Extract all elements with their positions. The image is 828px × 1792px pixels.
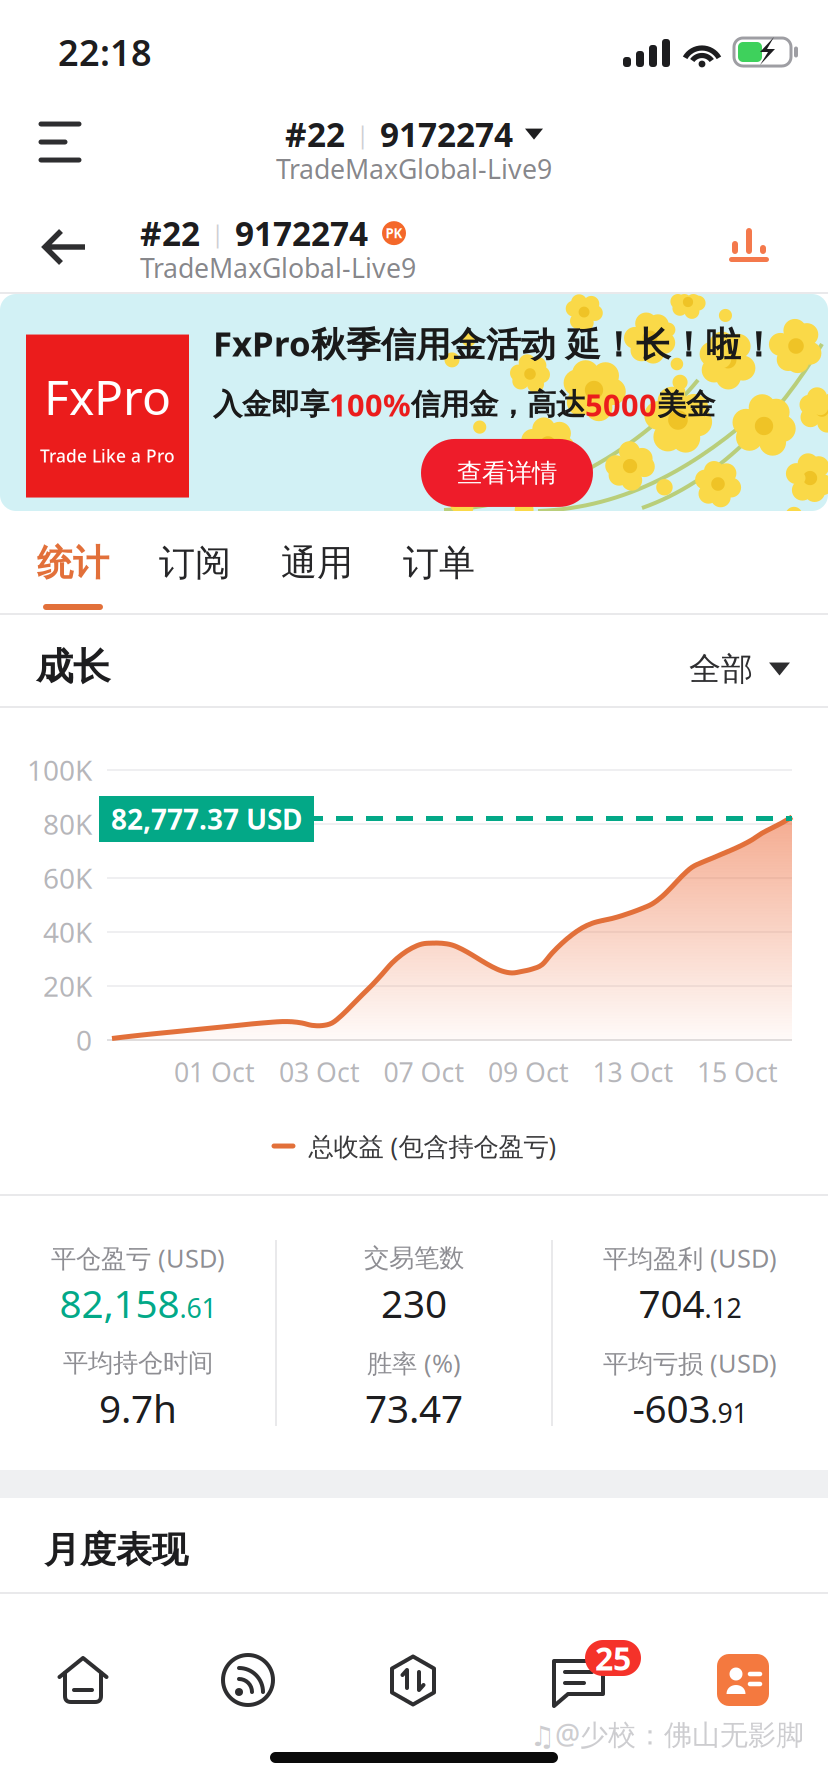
button[interactable]: Messages bbox=[551, 1652, 639, 1710]
staticText: 100K bbox=[27, 751, 92, 789]
staticText: FxPro bbox=[44, 365, 171, 428]
button[interactable]: 订阅 bbox=[134, 511, 256, 615]
button[interactable]: Home bbox=[57, 1655, 109, 1705]
staticText: 80K bbox=[43, 805, 92, 843]
button[interactable]: 全部 bbox=[596, 646, 790, 692]
staticText: 13 Oct bbox=[592, 1054, 673, 1090]
staticText: TradeMaxGlobal-Live9 bbox=[276, 151, 552, 186]
staticText: 平均亏损 (USD) bbox=[603, 1346, 777, 1380]
staticText: 25 bbox=[595, 1637, 631, 1679]
staticText: 0 bbox=[76, 1021, 92, 1059]
staticText: 信用金，高达 bbox=[411, 387, 585, 423]
staticText: 入金即享 bbox=[213, 387, 329, 423]
staticText: FxPro秋季信用金活动 延！长！啦！ bbox=[213, 320, 776, 366]
staticText: -603 bbox=[632, 1382, 710, 1434]
staticText: 胜率 (%) bbox=[367, 1346, 461, 1380]
staticText: | bbox=[211, 217, 224, 249]
staticText: 230 bbox=[381, 1277, 447, 1329]
staticText: .61 bbox=[179, 1290, 216, 1325]
staticText: .91 bbox=[710, 1395, 747, 1430]
staticText: ♫@少校：佛山无影脚 bbox=[530, 1715, 804, 1753]
staticText: 9.7h bbox=[99, 1382, 177, 1434]
staticText: 9172274 bbox=[235, 211, 368, 255]
staticText: 平仓盈亏 (USD) bbox=[51, 1241, 225, 1275]
staticText: 平均盈利 (USD) bbox=[603, 1241, 777, 1275]
staticText: 9172274 bbox=[380, 112, 513, 156]
staticText: 40K bbox=[43, 913, 92, 951]
staticText: 60K bbox=[43, 859, 92, 897]
staticText: 82,158 bbox=[59, 1277, 179, 1329]
staticText: 平均持仓时间 bbox=[63, 1347, 213, 1378]
staticText: #22 bbox=[140, 211, 200, 255]
staticText: 20K bbox=[43, 967, 92, 1005]
staticText: 09 Oct bbox=[488, 1054, 569, 1090]
staticText: 订单 bbox=[403, 541, 475, 585]
staticText: PK bbox=[385, 224, 402, 242]
staticText: TradeMaxGlobal-Live9 bbox=[140, 250, 416, 285]
staticText: 73.47 bbox=[365, 1382, 463, 1434]
button[interactable]: 订单 bbox=[378, 511, 500, 615]
staticText: 订阅 bbox=[159, 541, 231, 585]
button[interactable]: Trade bbox=[388, 1654, 438, 1707]
staticText: 22:18 bbox=[58, 28, 152, 76]
staticText: 82,777.37 USD bbox=[111, 800, 302, 838]
button[interactable]: Menu bbox=[20, 112, 100, 172]
staticText: 07 Oct bbox=[383, 1054, 464, 1090]
staticText: 704 bbox=[638, 1277, 704, 1329]
button[interactable]: FxPro bbox=[0, 294, 828, 511]
staticText: 01 Oct bbox=[174, 1054, 255, 1090]
button[interactable]: Back bbox=[30, 222, 100, 272]
staticText: #22 bbox=[285, 112, 345, 156]
staticText: 交易笔数 bbox=[364, 1242, 464, 1273]
button[interactable]: 通用 bbox=[256, 511, 378, 615]
staticText: 成长 bbox=[36, 644, 110, 690]
staticText: Trade Like a Pro bbox=[40, 444, 175, 467]
staticText: 全部 bbox=[689, 649, 753, 689]
staticText: 统计 bbox=[37, 541, 109, 585]
staticText: 通用 bbox=[281, 541, 353, 585]
staticText: .12 bbox=[704, 1290, 741, 1325]
button[interactable]: Profile bbox=[717, 1654, 769, 1706]
staticText: | bbox=[356, 118, 369, 150]
staticText: 总收益 (包含持仓盈亏) bbox=[308, 1129, 556, 1163]
button[interactable]: Statistics bbox=[719, 223, 779, 267]
staticText: 月度表现 bbox=[44, 1528, 188, 1572]
staticText: 查看详情 bbox=[457, 457, 557, 488]
staticText: 03 Oct bbox=[279, 1054, 360, 1090]
staticText: 5000 bbox=[585, 384, 657, 425]
staticText: 15 Oct bbox=[697, 1054, 778, 1090]
button[interactable]: Signals bbox=[223, 1655, 273, 1705]
button[interactable]: 统计 bbox=[12, 511, 134, 615]
staticText: 100% bbox=[329, 384, 411, 425]
staticText: 美金 bbox=[657, 387, 715, 423]
